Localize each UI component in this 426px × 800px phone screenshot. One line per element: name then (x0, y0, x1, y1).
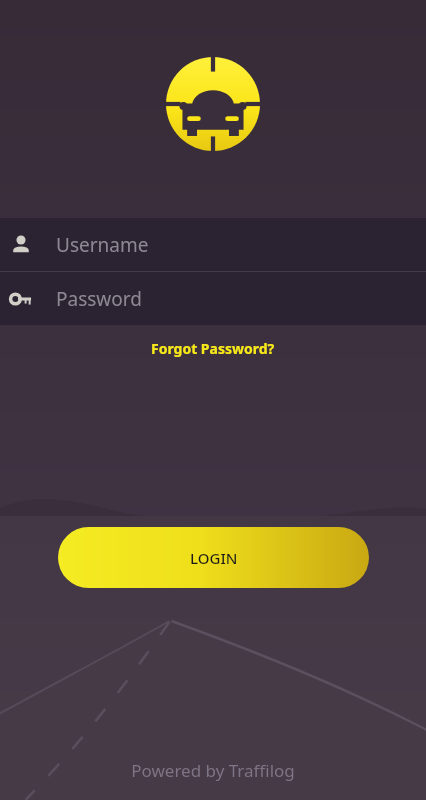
button[interactable]: Forgot Password? (143, 335, 283, 362)
button[interactable]: LOGIN (58, 527, 369, 588)
staticText: Username (56, 232, 149, 258)
other: Username (8, 232, 34, 258)
staticText: Powered by Traffilog (0, 759, 426, 782)
staticText: LOGIN (190, 548, 238, 568)
button[interactable]: Username (0, 218, 426, 271)
staticText: Password (56, 286, 142, 312)
button[interactable]: Password (0, 272, 426, 325)
other: Password (8, 286, 34, 312)
staticText: Forgot Password? (151, 339, 275, 358)
